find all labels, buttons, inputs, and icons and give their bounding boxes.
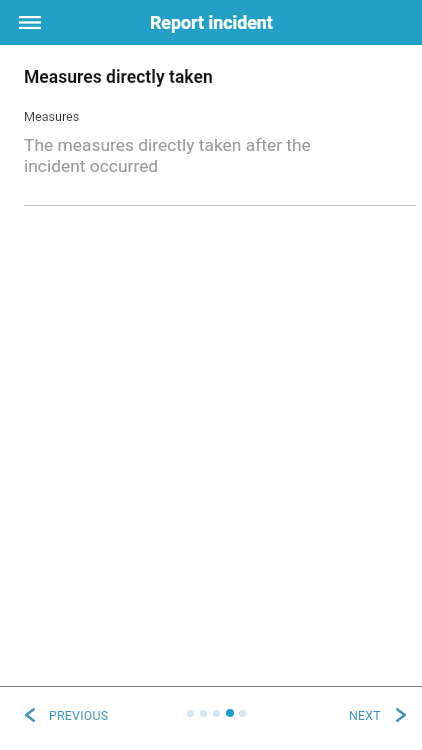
staticText: PREVIOUS — [49, 708, 109, 723]
button[interactable]: Next step — [341, 695, 422, 736]
staticText: The measures directly taken after the in… — [24, 135, 311, 177]
staticText: Report incident — [150, 12, 273, 33]
button[interactable]: Open navigation menu — [11, 4, 49, 42]
staticText: Measures directly taken — [24, 67, 213, 88]
staticText: Measures — [24, 109, 80, 124]
staticText: NEXT — [349, 708, 381, 723]
button[interactable]: Previous step — [9, 695, 117, 736]
